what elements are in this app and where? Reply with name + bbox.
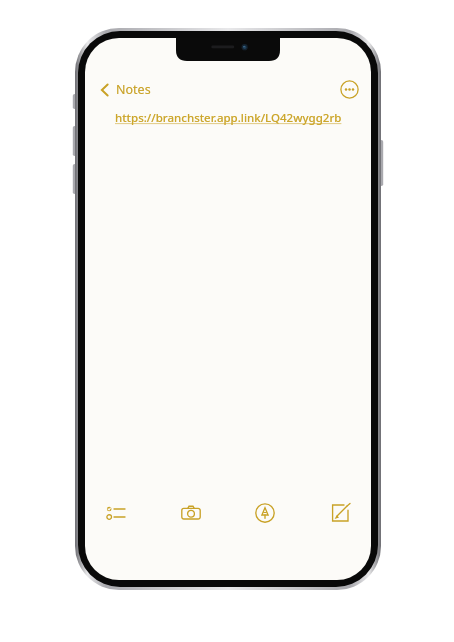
button[interactable]: Compose <box>323 496 357 530</box>
button[interactable]: https://branchster.app.link/LQ42wygg2rb <box>85 110 371 126</box>
button[interactable]: Notes <box>97 78 153 101</box>
button[interactable]: More options <box>340 80 359 99</box>
staticText: https://branchster.app.link/LQ42wygg2rb <box>115 110 342 126</box>
button[interactable]: Camera <box>174 496 208 530</box>
button[interactable]: Checklist <box>99 496 133 530</box>
button[interactable]: Markup <box>248 496 282 530</box>
staticText: Notes <box>116 81 151 98</box>
